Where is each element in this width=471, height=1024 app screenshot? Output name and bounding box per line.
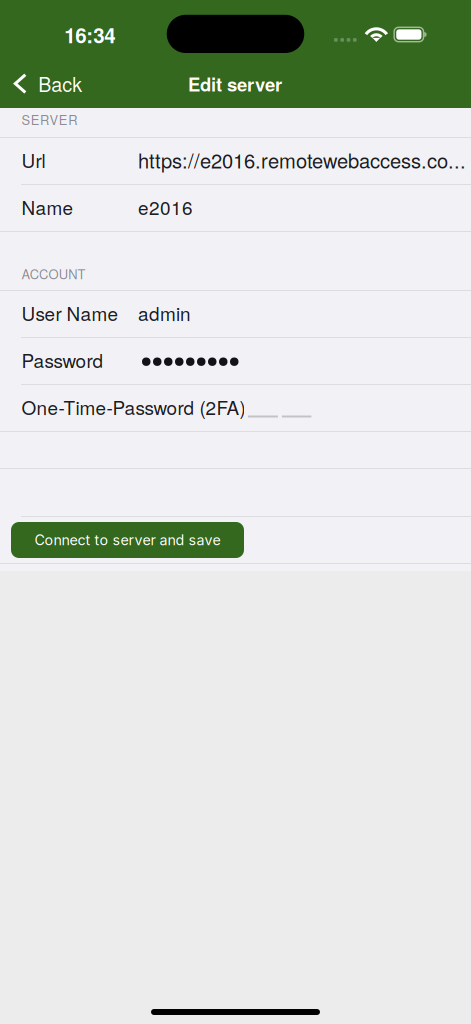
staticText: e2016 bbox=[138, 193, 193, 220]
staticText: 16:34 bbox=[64, 20, 115, 49]
staticText: Connect to server and save bbox=[34, 531, 220, 549]
staticText: admin bbox=[138, 299, 191, 326]
staticText: Edit server bbox=[188, 70, 282, 97]
staticText: One-Time-Password (2FA) bbox=[21, 393, 245, 420]
staticText: Password bbox=[21, 346, 103, 373]
staticText: SERVER bbox=[21, 110, 77, 129]
button[interactable]: Connect to server and save bbox=[11, 522, 244, 558]
staticText: ACCOUNT bbox=[21, 264, 85, 283]
button[interactable]: Back bbox=[0, 58, 94, 110]
staticText: https://e2016.remotewebaccess.co... bbox=[138, 145, 466, 174]
staticText: Name bbox=[21, 193, 73, 220]
staticText: User Name bbox=[21, 299, 118, 326]
staticText: Back bbox=[38, 69, 82, 98]
staticText: Url bbox=[21, 146, 45, 173]
